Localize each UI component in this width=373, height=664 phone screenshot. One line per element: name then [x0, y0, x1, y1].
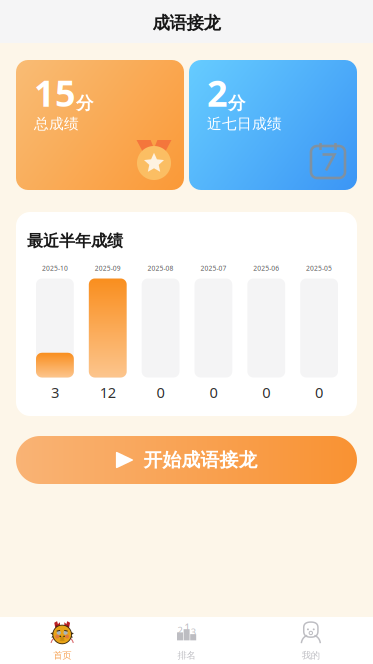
button[interactable]: 开始成语接龙: [16, 436, 357, 484]
button[interactable]: 2: [124, 617, 249, 664]
staticText: 最近半年成绩: [27, 231, 123, 251]
staticText: 2: [177, 624, 182, 636]
staticText: 近七日成绩: [207, 115, 282, 133]
staticText: 0: [157, 382, 165, 402]
staticText: 1: [184, 620, 190, 635]
staticText: 2025-08: [148, 264, 174, 273]
staticText: 15: [34, 69, 76, 117]
staticText: 我的: [302, 650, 320, 661]
staticText: 2025-10: [42, 264, 68, 273]
staticText: 2: [207, 69, 228, 117]
staticText: 分: [76, 92, 93, 114]
staticText: 首页: [53, 650, 71, 661]
button[interactable]: 我的: [249, 617, 373, 664]
staticText: 2025-06: [253, 264, 279, 273]
staticText: 2025-05: [306, 264, 332, 273]
staticText: 成语接龙: [152, 12, 220, 34]
staticText: 总成绩: [34, 115, 79, 133]
staticText: 2025-07: [200, 264, 226, 273]
staticText: 0: [209, 382, 217, 402]
staticText: 0: [315, 382, 323, 402]
staticText: 3: [191, 626, 196, 638]
staticText: 12: [100, 382, 116, 402]
staticText: 排名: [177, 650, 195, 661]
staticText: 开始成语接龙: [143, 448, 257, 471]
staticText: 分: [228, 92, 245, 114]
button[interactable]: 首页: [0, 617, 124, 664]
staticText: 3: [51, 382, 59, 402]
staticText: 0: [262, 382, 270, 402]
staticText: 2025-09: [95, 264, 121, 273]
